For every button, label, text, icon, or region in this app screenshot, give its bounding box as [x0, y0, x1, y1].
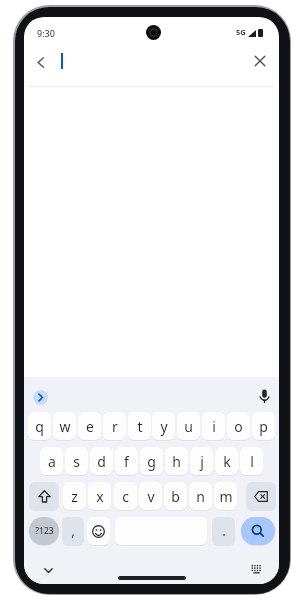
button[interactable]: a — [40, 447, 63, 475]
staticText: d — [97, 452, 106, 471]
staticText: f — [124, 452, 129, 471]
button[interactable]: k — [215, 447, 238, 475]
button[interactable]: r — [103, 412, 126, 440]
button[interactable]: z — [63, 482, 86, 510]
button[interactable]: b — [164, 482, 187, 510]
button[interactable]: w — [53, 412, 76, 440]
staticText: r — [112, 417, 118, 436]
staticText: v — [147, 487, 155, 506]
button[interactable]: j — [190, 447, 213, 475]
button[interactable]: s — [65, 447, 88, 475]
button[interactable]: q — [28, 412, 51, 440]
button[interactable]: ?123 — [29, 517, 59, 545]
button[interactable]: x — [88, 482, 111, 510]
staticText: 9:30 — [37, 27, 55, 39]
staticText: 5G — [236, 27, 246, 37]
staticText: w — [59, 417, 71, 436]
button[interactable]: t — [128, 412, 151, 440]
button[interactable] — [36, 57, 46, 68]
staticText: y — [160, 417, 168, 436]
button[interactable] — [29, 482, 59, 510]
button[interactable] — [246, 482, 276, 510]
staticText: g — [147, 452, 156, 471]
staticText: x — [96, 487, 104, 506]
staticText: e — [86, 417, 94, 436]
button[interactable] — [254, 55, 266, 67]
button[interactable] — [241, 517, 275, 545]
staticText: z — [71, 487, 78, 506]
staticText: u — [184, 417, 193, 436]
staticText: o — [234, 417, 243, 436]
staticText: i — [212, 417, 216, 436]
staticText: h — [172, 452, 181, 471]
button[interactable]: u — [177, 412, 200, 440]
button[interactable]: f — [115, 447, 138, 475]
button[interactable] — [87, 517, 110, 545]
button[interactable]: m — [214, 482, 237, 510]
button[interactable] — [251, 565, 262, 574]
button[interactable]: v — [139, 482, 162, 510]
staticText: . — [222, 522, 226, 540]
button[interactable]: i — [202, 412, 225, 440]
staticText: b — [171, 487, 180, 506]
button[interactable]: . — [212, 517, 235, 545]
staticText: j — [200, 452, 204, 471]
staticText: k — [223, 452, 231, 471]
button[interactable]: e — [78, 412, 101, 440]
button[interactable]: h — [165, 447, 188, 475]
staticText: s — [73, 452, 80, 471]
staticText: , — [71, 522, 75, 540]
staticText: p — [259, 417, 268, 436]
button[interactable]: g — [140, 447, 163, 475]
button[interactable]: p — [252, 412, 275, 440]
staticText: t — [137, 417, 143, 436]
button[interactable]: y — [152, 412, 175, 440]
button[interactable] — [44, 567, 53, 575]
button[interactable]: o — [227, 412, 250, 440]
button[interactable]: l — [240, 447, 263, 475]
staticText: m — [219, 487, 233, 506]
staticText: l — [250, 452, 254, 471]
staticText: n — [196, 487, 205, 506]
button[interactable]: c — [114, 482, 137, 510]
staticText: a — [48, 452, 56, 471]
button[interactable]: , — [62, 517, 84, 545]
button[interactable] — [259, 389, 270, 404]
staticText: ?123 — [35, 525, 54, 537]
staticText: c — [122, 487, 129, 506]
staticText: q — [35, 417, 44, 436]
button[interactable]: d — [90, 447, 113, 475]
button[interactable] — [33, 390, 48, 405]
button[interactable]: n — [189, 482, 212, 510]
